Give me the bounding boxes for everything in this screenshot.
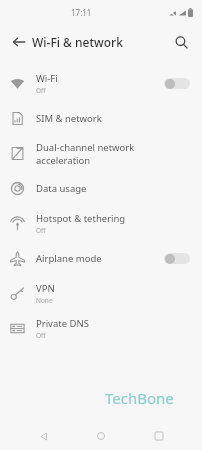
staticText: Wi-Fi & network: [32, 34, 123, 50]
staticText: Hotspot & tethering: [36, 212, 126, 225]
button[interactable]: Airplane mode: [0, 241, 202, 276]
staticText: TechBone: [105, 388, 174, 408]
button[interactable]: Wi-Fi toggle: [164, 78, 190, 89]
staticText: Dual-channel network acceleration: [36, 141, 190, 167]
staticText: Off: [36, 331, 46, 340]
button[interactable]: Search: [166, 27, 196, 57]
staticText: Data usage: [36, 182, 87, 195]
button[interactable]: Private DNS: [0, 311, 202, 346]
button[interactable]: Dual-channel network acceleration: [0, 136, 202, 171]
button[interactable]: SIM & network: [0, 101, 202, 136]
button[interactable]: Airplane mode toggle: [164, 253, 190, 264]
staticText: 17:11: [71, 7, 92, 18]
staticText: Off: [36, 226, 46, 235]
button[interactable]: Hotspot & tethering: [0, 206, 202, 241]
staticText: Airplane mode: [36, 252, 102, 265]
staticText: VPN: [36, 282, 55, 295]
button[interactable]: Home: [87, 422, 115, 450]
staticText: Wi-Fi: [36, 72, 58, 85]
staticText: Off: [36, 86, 46, 95]
staticText: SIM & network: [36, 112, 102, 125]
button[interactable]: Recents: [145, 422, 173, 450]
button[interactable]: Data usage: [0, 171, 202, 206]
button[interactable]: VPN: [0, 276, 202, 311]
button[interactable]: Back: [30, 422, 58, 450]
staticText: None: [36, 296, 53, 305]
button[interactable]: Back: [4, 27, 34, 57]
staticText: Private DNS: [36, 317, 89, 330]
button[interactable]: Wi-Fi: [0, 66, 202, 101]
